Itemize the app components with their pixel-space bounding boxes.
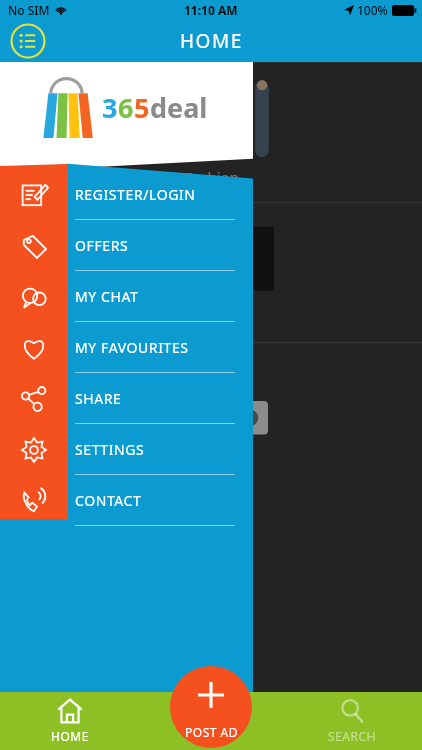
button[interactable]: Electronics (0, 342, 422, 482)
staticText: 3 (102, 89, 118, 126)
button[interactable]: MY CHAT (0, 271, 253, 322)
staticText: CONTACT (75, 491, 142, 510)
staticText: POST AD (185, 724, 238, 740)
staticText: Furniture (178, 307, 244, 327)
staticText: 5 (134, 89, 150, 126)
staticText: MY FAVOURITES (75, 338, 189, 357)
staticText: REGISTER/LOGIN (75, 185, 196, 204)
staticText: Fashion (184, 167, 239, 187)
staticText: SEARCH (328, 728, 376, 744)
button[interactable]: MY FAVOURITES (0, 322, 253, 373)
staticText: HOME (51, 728, 89, 744)
staticText: SHARE (75, 389, 122, 408)
button[interactable]: HOME (0, 692, 140, 750)
staticText: deal (150, 89, 208, 126)
staticText: No SIM (8, 2, 50, 18)
staticText: 6 (118, 89, 134, 126)
button[interactable]: OFFERS (0, 220, 253, 271)
button[interactable]: Furniture (0, 202, 422, 342)
staticText: OFFERS (75, 236, 129, 255)
button[interactable]: SETTINGS (0, 424, 253, 475)
button[interactable]: POST AD (170, 666, 252, 748)
button[interactable]: Open menu (10, 23, 46, 59)
button[interactable]: SHARE (0, 373, 253, 424)
button[interactable]: REGISTER/LOGIN (0, 169, 253, 220)
staticText: HOME (180, 28, 243, 54)
staticText: MY CHAT (75, 287, 139, 306)
staticText: SETTINGS (75, 440, 145, 459)
button[interactable]: CONTACT (0, 475, 253, 526)
staticText: 100% (357, 2, 388, 18)
button[interactable]: Fashion (0, 62, 422, 202)
staticText: 11:10 AM (184, 2, 238, 18)
button[interactable]: SEARCH (281, 692, 422, 750)
